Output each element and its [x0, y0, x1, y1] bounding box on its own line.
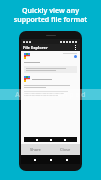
button[interactable]: Recent apps	[64, 157, 69, 162]
button[interactable]: Share	[21, 144, 50, 155]
button[interactable]: Back	[32, 157, 37, 162]
button[interactable]: Close	[50, 144, 80, 155]
staticText: Quickly view any supported file format	[6, 6, 95, 24]
staticText: Close	[60, 147, 71, 152]
button[interactable]: Page view	[49, 138, 52, 141]
staticText: File Explorer	[23, 45, 48, 50]
button[interactable]: More options	[73, 45, 78, 50]
staticText: A p p L a u n c h p a d	[15, 90, 86, 100]
staticText: Share	[30, 147, 41, 152]
button[interactable]: Next page	[63, 138, 66, 141]
button[interactable]: Previous page	[35, 138, 38, 141]
button[interactable]: Home	[48, 157, 53, 162]
